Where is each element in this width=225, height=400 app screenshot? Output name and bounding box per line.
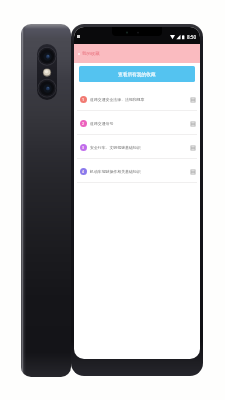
- staticText: 1: [82, 97, 85, 102]
- staticText: 3: [82, 145, 85, 150]
- other: Open chapter: [190, 145, 196, 151]
- staticText: 我的收藏: [82, 51, 100, 57]
- staticText: 4: [82, 169, 85, 174]
- button[interactable]: 4: [74, 159, 200, 183]
- staticText: 道路交通信号: [90, 121, 114, 126]
- staticText: 8:50: [187, 34, 197, 40]
- button[interactable]: 我的收藏: [74, 44, 104, 63]
- other: Open chapter: [190, 169, 196, 175]
- button[interactable]: 2: [74, 111, 200, 135]
- staticText: 2: [82, 121, 85, 126]
- staticText: 安全行车、文明驾驶基础知识: [90, 145, 141, 150]
- staticText: 机动车驾驶操作相关基础知识: [90, 169, 141, 174]
- staticText: 查看所有我的收藏: [118, 71, 156, 77]
- button[interactable]: 1: [74, 87, 200, 111]
- button[interactable]: 查看所有我的收藏: [79, 66, 195, 82]
- other: Open chapter: [190, 97, 196, 103]
- button[interactable]: 3: [74, 135, 200, 159]
- other: Open chapter: [190, 121, 196, 127]
- staticText: 道路交通安全法律、法规和规章: [90, 97, 145, 102]
